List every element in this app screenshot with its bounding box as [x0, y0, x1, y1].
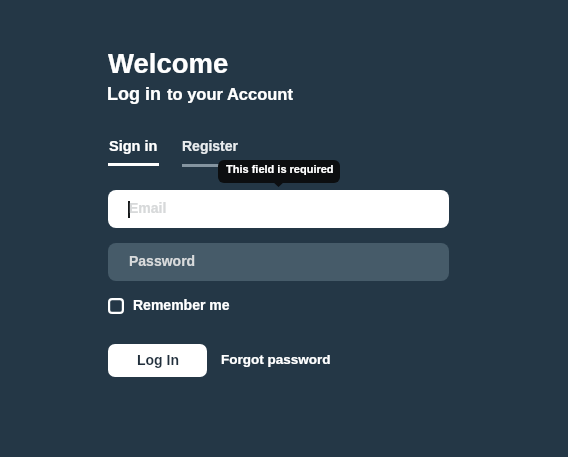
- button[interactable]: Register: [182, 138, 239, 154]
- button[interactable]: Email: [108, 190, 449, 228]
- staticText: Remember me: [133, 297, 230, 313]
- staticText: Welcome: [108, 48, 229, 79]
- staticText: Email: [129, 200, 167, 216]
- other: Remember me checkbox: [108, 298, 124, 314]
- button[interactable]: Remember me checkbox: [108, 298, 230, 314]
- button[interactable]: Sign in: [109, 138, 158, 154]
- staticText: Password: [129, 253, 196, 269]
- staticText: to your Account: [167, 85, 293, 103]
- button[interactable]: Log In: [108, 344, 207, 377]
- staticText: Log In: [137, 352, 179, 368]
- staticText: This field is required: [226, 163, 334, 175]
- staticText: Log in: [107, 84, 161, 104]
- button[interactable]: Password: [108, 243, 449, 281]
- button[interactable]: Forgot password: [221, 352, 331, 367]
